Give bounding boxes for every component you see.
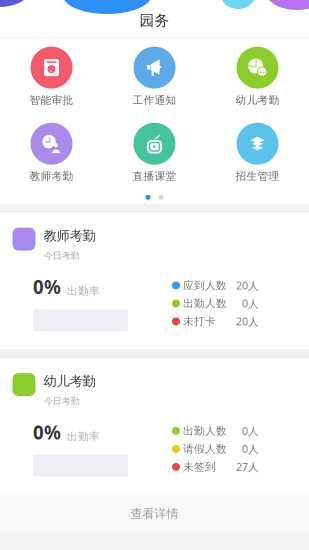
staticText: 20人 xyxy=(236,314,259,329)
staticText: 今日考勤 xyxy=(43,250,79,261)
staticText: 未签到 xyxy=(183,460,216,473)
staticText: 教师考勤 xyxy=(29,170,73,183)
staticText: 请假人数 xyxy=(183,442,227,455)
staticText: 27人 xyxy=(236,460,259,474)
staticText: 出勤率 xyxy=(67,430,100,443)
button[interactable]: 教师考勤 xyxy=(0,123,103,183)
staticText: 幼儿考勤 xyxy=(43,373,95,389)
button[interactable]: 直播课堂 xyxy=(103,123,206,183)
staticText: 0人 xyxy=(242,442,259,456)
staticText: 出勤率 xyxy=(67,285,100,298)
staticText: 幼儿考勤 xyxy=(235,94,279,107)
button[interactable]: 智能审批 xyxy=(0,47,103,107)
staticText: 20人 xyxy=(236,278,259,293)
staticText: 招生管理 xyxy=(235,170,279,183)
button[interactable]: 工作通知 xyxy=(103,47,206,107)
button[interactable]: 查看详情 xyxy=(0,495,309,532)
staticText: 教师考勤 xyxy=(43,228,95,244)
staticText: 0% xyxy=(33,274,61,299)
staticText: 今日考勤 xyxy=(43,395,79,407)
staticText: 应到人数 xyxy=(183,279,227,292)
staticText: 未打卡 xyxy=(183,315,216,328)
staticText: 直播课堂 xyxy=(132,170,176,183)
staticText: 园务 xyxy=(139,11,169,29)
button[interactable]: 幼儿考勤 xyxy=(206,47,309,107)
staticText: 0人 xyxy=(242,296,259,311)
staticText: 0% xyxy=(33,420,61,445)
staticText: 智能审批 xyxy=(29,94,73,107)
staticText: 出勤人数 xyxy=(183,297,227,310)
staticText: 0人 xyxy=(242,424,259,438)
staticText: 查看详情 xyxy=(130,506,178,521)
staticText: 出勤人数 xyxy=(183,424,227,437)
button[interactable]: 招生管理 xyxy=(206,123,309,183)
staticText: 工作通知 xyxy=(132,94,176,107)
